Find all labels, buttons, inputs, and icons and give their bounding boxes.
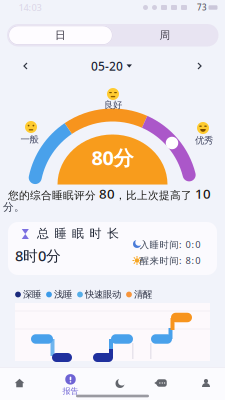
staticText: 周	[159, 29, 170, 42]
staticText: 快速眼动	[85, 289, 121, 300]
button[interactable]: 睡眠	[103, 370, 137, 396]
staticText: 报告	[62, 386, 78, 396]
staticText: 一般	[20, 134, 38, 145]
button[interactable]: 首页	[2, 370, 36, 396]
staticText: 清醒	[134, 289, 152, 300]
button[interactable]: Select date	[91, 58, 132, 74]
staticText: 优秀	[195, 135, 213, 146]
button[interactable]: 报告	[53, 371, 87, 399]
button[interactable]: 我的	[189, 370, 223, 396]
staticText: 良好	[104, 99, 122, 111]
button[interactable]: 周	[115, 25, 215, 45]
staticText: 80分	[91, 144, 133, 171]
staticText: 8时0分	[15, 246, 61, 265]
staticText: 分。	[3, 200, 25, 213]
staticText: 73	[197, 2, 207, 13]
staticText: 深睡	[23, 289, 41, 300]
staticText: 总睡眠时长	[37, 226, 119, 241]
button[interactable]: 消息	[143, 370, 177, 396]
staticText: 醒来时间: 8:0	[140, 254, 200, 267]
staticText: 您的综合睡眠评分 80，比上次提高了 10	[8, 185, 211, 202]
staticText: 日	[55, 29, 66, 42]
button[interactable]: Previous day	[21, 62, 29, 70]
staticText: 14:03	[18, 1, 41, 14]
staticText: 入睡时间: 0:0	[140, 238, 200, 251]
staticText: 05-20	[91, 58, 123, 74]
button[interactable]: 日	[8, 25, 113, 45]
staticText: 浅睡	[54, 289, 72, 300]
button[interactable]: Next day	[195, 62, 203, 70]
